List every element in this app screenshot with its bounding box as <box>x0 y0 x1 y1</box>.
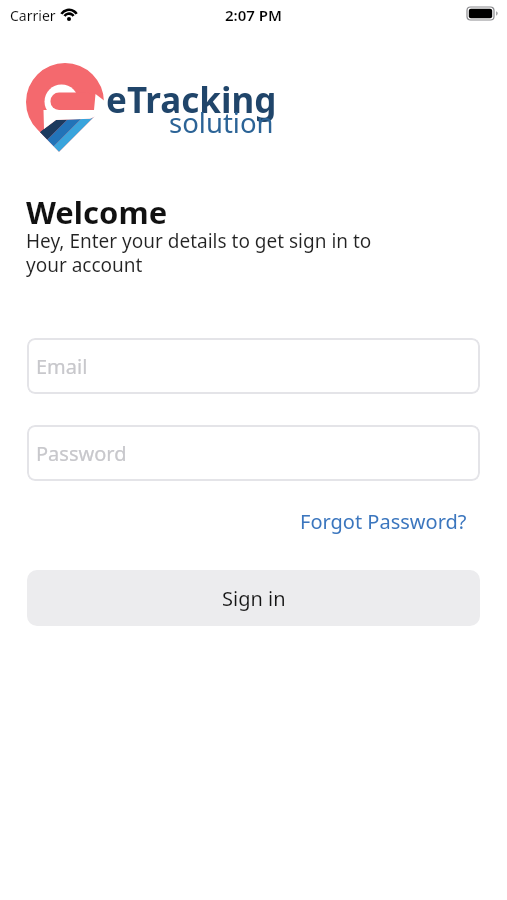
staticText: Password <box>36 440 127 467</box>
staticText: Carrier <box>10 6 56 25</box>
button[interactable]: Password <box>27 425 480 481</box>
button[interactable]: Email <box>27 338 480 394</box>
staticText: Hey, Enter your details to get sign in t… <box>26 228 372 277</box>
button[interactable]: Sign in <box>27 570 480 626</box>
staticText: eTracking <box>106 76 274 124</box>
button[interactable]: Forgot Password? <box>300 508 467 535</box>
staticText: Sign in <box>222 585 286 612</box>
staticText: 2:07 PM <box>225 5 282 25</box>
staticText: solution <box>169 104 274 141</box>
staticText: Email <box>36 353 88 380</box>
staticText: Welcome <box>26 191 168 233</box>
